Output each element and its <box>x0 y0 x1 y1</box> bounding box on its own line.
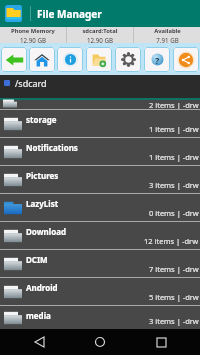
staticText: DCIM <box>26 254 48 265</box>
staticText: ? <box>155 54 160 66</box>
staticText: 12.90 GB <box>87 36 113 43</box>
button[interactable]: Notifications <box>0 138 200 165</box>
staticText: Download <box>26 226 66 237</box>
staticText: File Manager <box>37 7 102 21</box>
staticText: Notifications <box>26 142 78 153</box>
button[interactable]: Android <box>0 278 200 305</box>
button[interactable]: Share <box>171 43 200 75</box>
button[interactable]: Recents <box>139 329 183 355</box>
button[interactable]: New folder <box>84 43 113 75</box>
staticText: 1 items | -drw <box>149 152 199 162</box>
button[interactable]: DCIM <box>0 250 200 277</box>
staticText: storage <box>26 114 57 125</box>
button[interactable]: Back <box>0 43 28 75</box>
staticText: Available <box>154 27 181 35</box>
staticText: Pictures <box>26 170 59 181</box>
staticText: 7 items | -drw <box>149 264 199 274</box>
button[interactable]: Phone Memory <box>0 27 66 43</box>
staticText: LazyList <box>26 198 59 209</box>
staticText: 5 items | -drw <box>149 292 199 302</box>
staticText: 12.90 GB <box>20 36 46 43</box>
button[interactable]: Help <box>142 43 171 75</box>
button[interactable]: Back <box>17 329 61 355</box>
button[interactable]: sdcard:Total <box>67 27 133 43</box>
button[interactable]: 2 items | -drw <box>0 100 200 109</box>
staticText: media <box>26 310 51 321</box>
staticText: 3 items | -drw <box>149 316 199 326</box>
staticText: /sdcard <box>15 77 47 89</box>
staticText: 2 items | -drw <box>149 100 199 109</box>
button[interactable]: /sdcard <box>0 75 200 98</box>
staticText: 3 items | -drw <box>149 180 199 190</box>
staticText: 1 items | -drw <box>149 124 199 134</box>
button[interactable]: storage <box>0 110 200 137</box>
button[interactable]: Download <box>0 222 200 249</box>
staticText: 7.91 GB <box>156 36 179 43</box>
staticText: Android <box>26 282 58 293</box>
staticText: 12 items | -drw <box>144 236 199 246</box>
button[interactable]: Home <box>28 43 56 75</box>
button[interactable]: LazyList <box>0 194 200 221</box>
button[interactable]: Home <box>78 329 122 355</box>
staticText: 0 items | -drw <box>149 208 199 218</box>
staticText: sdcard:Total <box>82 27 118 35</box>
staticText: Phone Memory <box>11 27 55 35</box>
button[interactable]: Settings <box>113 43 142 75</box>
button[interactable]: Available <box>134 27 200 43</box>
button[interactable]: Info <box>56 43 84 75</box>
button[interactable]: Pictures <box>0 166 200 193</box>
button[interactable]: media <box>0 306 200 329</box>
